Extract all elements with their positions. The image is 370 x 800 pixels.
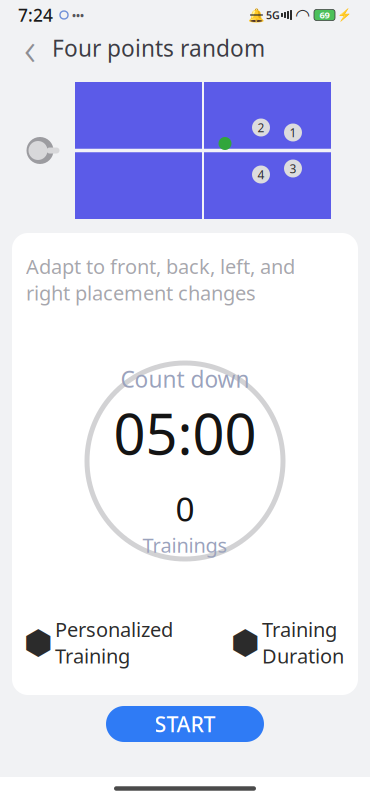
staticText: ⬢ bbox=[230, 623, 259, 661]
staticText: START bbox=[154, 710, 215, 738]
staticText: 4 bbox=[257, 166, 264, 182]
staticText: 0 bbox=[175, 486, 194, 531]
staticText: ◠ bbox=[296, 5, 309, 25]
staticText: ⬢ bbox=[23, 623, 52, 661]
staticText: Training Duration bbox=[262, 616, 344, 669]
staticText: Adapt to front, back, left, and right pl… bbox=[26, 253, 295, 306]
staticText: Trainings bbox=[142, 532, 227, 558]
staticText: 1 bbox=[289, 124, 296, 140]
staticText: 🔔 bbox=[248, 7, 265, 23]
staticText: 2 bbox=[257, 119, 264, 135]
staticText: ⚡ bbox=[337, 8, 352, 22]
staticText: 7:24 bbox=[18, 3, 53, 26]
staticText: ‹ bbox=[24, 18, 36, 78]
staticText: ↑ bbox=[30, 633, 45, 652]
staticText: Four points random bbox=[52, 33, 265, 63]
button[interactable]: START bbox=[106, 706, 264, 742]
staticText: 5G bbox=[266, 8, 280, 22]
staticText: ••• bbox=[72, 8, 84, 22]
staticText: Count down bbox=[120, 364, 249, 394]
button[interactable]: Back bbox=[12, 30, 48, 66]
staticText: 69 bbox=[319, 9, 329, 21]
staticText: Personalized Training bbox=[55, 616, 173, 669]
button[interactable]: ⬢ bbox=[233, 616, 344, 669]
staticText: 3 bbox=[289, 160, 296, 176]
staticText: 05:00 bbox=[113, 396, 256, 470]
button[interactable]: ⬢ bbox=[26, 616, 173, 669]
